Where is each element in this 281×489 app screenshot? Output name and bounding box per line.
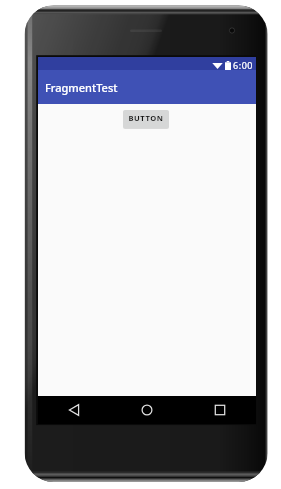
staticText: BUTTON xyxy=(128,113,164,123)
button[interactable]: BUTTON xyxy=(123,110,169,128)
staticText: FragmentTest xyxy=(45,80,118,95)
button[interactable]: Back xyxy=(38,396,110,424)
button[interactable]: Recent apps xyxy=(183,396,256,424)
button[interactable]: FragmentTest xyxy=(38,70,256,104)
button[interactable]: Home xyxy=(110,396,183,424)
staticText: 6:00 xyxy=(233,59,254,71)
